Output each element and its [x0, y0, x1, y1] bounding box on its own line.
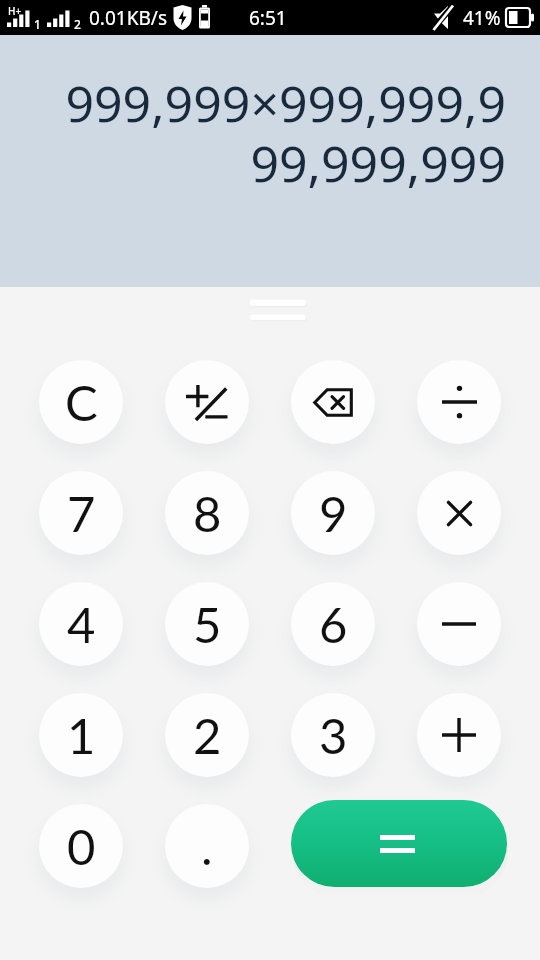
staticText: 3 — [319, 706, 348, 765]
staticText: 0.01KB/s — [89, 5, 167, 31]
button[interactable]: Plus minus — [165, 360, 249, 444]
button[interactable]: 4 — [39, 582, 123, 666]
button[interactable]: 9 — [291, 471, 375, 555]
button[interactable]: 6 — [291, 582, 375, 666]
staticText: 0 — [67, 817, 96, 876]
staticText: 5 — [193, 595, 222, 654]
button[interactable]: 8 — [165, 471, 249, 555]
button[interactable]: Drag handle — [250, 296, 306, 322]
staticText: 41% — [463, 5, 501, 31]
button[interactable]: Plus — [417, 693, 501, 777]
staticText: 999,999×999,999,999,999,999 — [46, 69, 506, 197]
staticText: 4 — [67, 595, 96, 654]
staticText: 9 — [319, 484, 348, 543]
button[interactable]: 0 — [39, 804, 123, 888]
button[interactable]: 1 — [39, 693, 123, 777]
button[interactable]: 5 — [165, 582, 249, 666]
button[interactable]: Minus — [417, 582, 501, 666]
button[interactable]: C — [39, 360, 123, 444]
button[interactable]: 2 — [165, 693, 249, 777]
button[interactable]: Divide — [417, 360, 501, 444]
button[interactable]: Delete — [291, 360, 375, 444]
staticText: 2 — [74, 16, 81, 32]
staticText: H+ — [8, 4, 22, 18]
staticText: 2 — [193, 706, 222, 765]
staticText: . — [201, 817, 213, 876]
button[interactable]: . — [165, 804, 249, 888]
staticText: 6:51 — [249, 5, 287, 31]
staticText: 1 — [34, 16, 41, 32]
staticText: C — [65, 373, 98, 432]
staticText: 7 — [67, 484, 96, 543]
staticText: 1 — [67, 706, 96, 765]
staticText: 8 — [193, 484, 222, 543]
button[interactable]: Equals — [291, 800, 507, 887]
staticText: 6 — [319, 595, 348, 654]
button[interactable]: Multiply — [417, 471, 501, 555]
button[interactable]: 7 — [39, 471, 123, 555]
button[interactable]: 3 — [291, 693, 375, 777]
